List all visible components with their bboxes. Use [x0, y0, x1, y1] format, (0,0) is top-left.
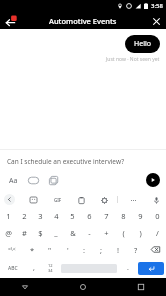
button[interactable]: Close — [149, 14, 163, 28]
staticText: Automotive Events — [49, 16, 117, 26]
button[interactable]: 0 — [149, 207, 166, 224]
staticText: $ — [38, 228, 43, 238]
staticText: 0 — [155, 211, 160, 221]
staticText: 1 — [6, 211, 11, 221]
staticText: " — [48, 245, 52, 255]
staticText: 4 — [54, 211, 59, 221]
button[interactable]: Emoji — [27, 194, 39, 206]
staticText: Hello — [134, 39, 151, 49]
button[interactable]: @ — [0, 224, 16, 241]
staticText: @ — [5, 228, 12, 238]
staticText: - — [88, 228, 91, 238]
button[interactable]: & — [64, 224, 81, 241]
staticText: & — [70, 228, 76, 238]
staticText: ! — [117, 245, 120, 255]
staticText: + — [104, 228, 109, 238]
staticText: . — [127, 263, 129, 273]
button[interactable]: $ — [32, 224, 48, 241]
staticText: ' — [67, 245, 69, 255]
button[interactable]: - — [81, 224, 98, 241]
button[interactable]: 5 — [64, 207, 81, 224]
staticText: Can I schedule an executive interview? — [7, 157, 124, 166]
button[interactable]: Back — [2, 13, 18, 29]
staticText: 9 — [138, 211, 143, 221]
button[interactable]: 9 — [132, 207, 149, 224]
button[interactable]: 4 — [48, 207, 64, 224]
staticText: 8 — [121, 211, 126, 221]
staticText: ) — [139, 228, 142, 238]
button[interactable]: ABC — [0, 260, 25, 276]
staticText: Aa — [9, 176, 18, 186]
staticText: 3:58 — [151, 2, 163, 10]
staticText: / — [156, 228, 159, 238]
button[interactable]: 12 — [42, 260, 59, 276]
button[interactable]: Back — [18, 280, 32, 294]
button[interactable]: . — [119, 260, 136, 276]
button[interactable]: ' — [59, 241, 76, 258]
button[interactable]: More options — [127, 194, 139, 206]
staticText: 12 — [48, 263, 53, 268]
button[interactable]: GIF keyboard — [51, 193, 64, 206]
button[interactable]: / — [149, 224, 166, 241]
staticText: ? — [134, 245, 138, 255]
button[interactable]: =\< — [0, 241, 23, 258]
staticText: , — [33, 263, 35, 273]
button[interactable] — [144, 241, 166, 258]
button[interactable]: : — [76, 241, 93, 258]
button[interactable]: ; — [93, 241, 110, 258]
staticText: Just now · Not seen yet — [106, 56, 160, 63]
button[interactable]: 2 — [16, 207, 32, 224]
button[interactable]: 6 — [81, 207, 98, 224]
button[interactable]: 3 — [32, 207, 48, 224]
button[interactable]: Send — [146, 173, 160, 187]
button[interactable]: Voice input — [150, 194, 162, 206]
button[interactable]: , — [25, 260, 42, 276]
button[interactable]: # — [16, 224, 32, 241]
button[interactable]: Clipboard — [75, 194, 87, 206]
staticText: 2 — [22, 211, 27, 221]
staticText: 34 — [48, 268, 53, 273]
button[interactable]: * — [23, 241, 41, 258]
button[interactable]: 8 — [115, 207, 132, 224]
staticText: # — [22, 228, 27, 238]
button[interactable]: _ — [48, 224, 64, 241]
staticText: ; — [100, 245, 103, 255]
button[interactable]: + — [98, 224, 115, 241]
staticText: * — [30, 245, 35, 255]
staticText: 5 — [70, 211, 75, 221]
staticText: : — [83, 245, 86, 255]
button[interactable]: Hello — [125, 35, 160, 53]
button[interactable]: Expand toolbar — [4, 194, 15, 205]
button[interactable]: Home — [76, 280, 90, 294]
button[interactable]: Settings — [98, 194, 110, 206]
staticText: ( — [122, 228, 125, 238]
button[interactable]: ) — [132, 224, 149, 241]
staticText: 7 — [104, 211, 109, 221]
button[interactable]: Recents — [134, 280, 148, 294]
staticText: GIF — [54, 197, 62, 203]
button[interactable]: Stickers — [47, 174, 60, 187]
button[interactable]: ( — [115, 224, 132, 241]
button[interactable]: Enter — [138, 262, 164, 275]
staticText: =\< — [8, 246, 16, 253]
button[interactable]: ! — [110, 241, 127, 258]
button[interactable]: 1 — [0, 207, 16, 224]
button[interactable]: ? — [127, 241, 144, 258]
button[interactable]: 7 — [98, 207, 115, 224]
button[interactable]: GIF — [27, 174, 40, 187]
button[interactable]: Format text — [7, 174, 20, 187]
button[interactable]: " — [41, 241, 59, 258]
staticText: 6 — [87, 211, 92, 221]
staticText: _ — [54, 228, 58, 238]
staticText: ABC — [8, 265, 18, 272]
staticText: 3 — [38, 211, 43, 221]
